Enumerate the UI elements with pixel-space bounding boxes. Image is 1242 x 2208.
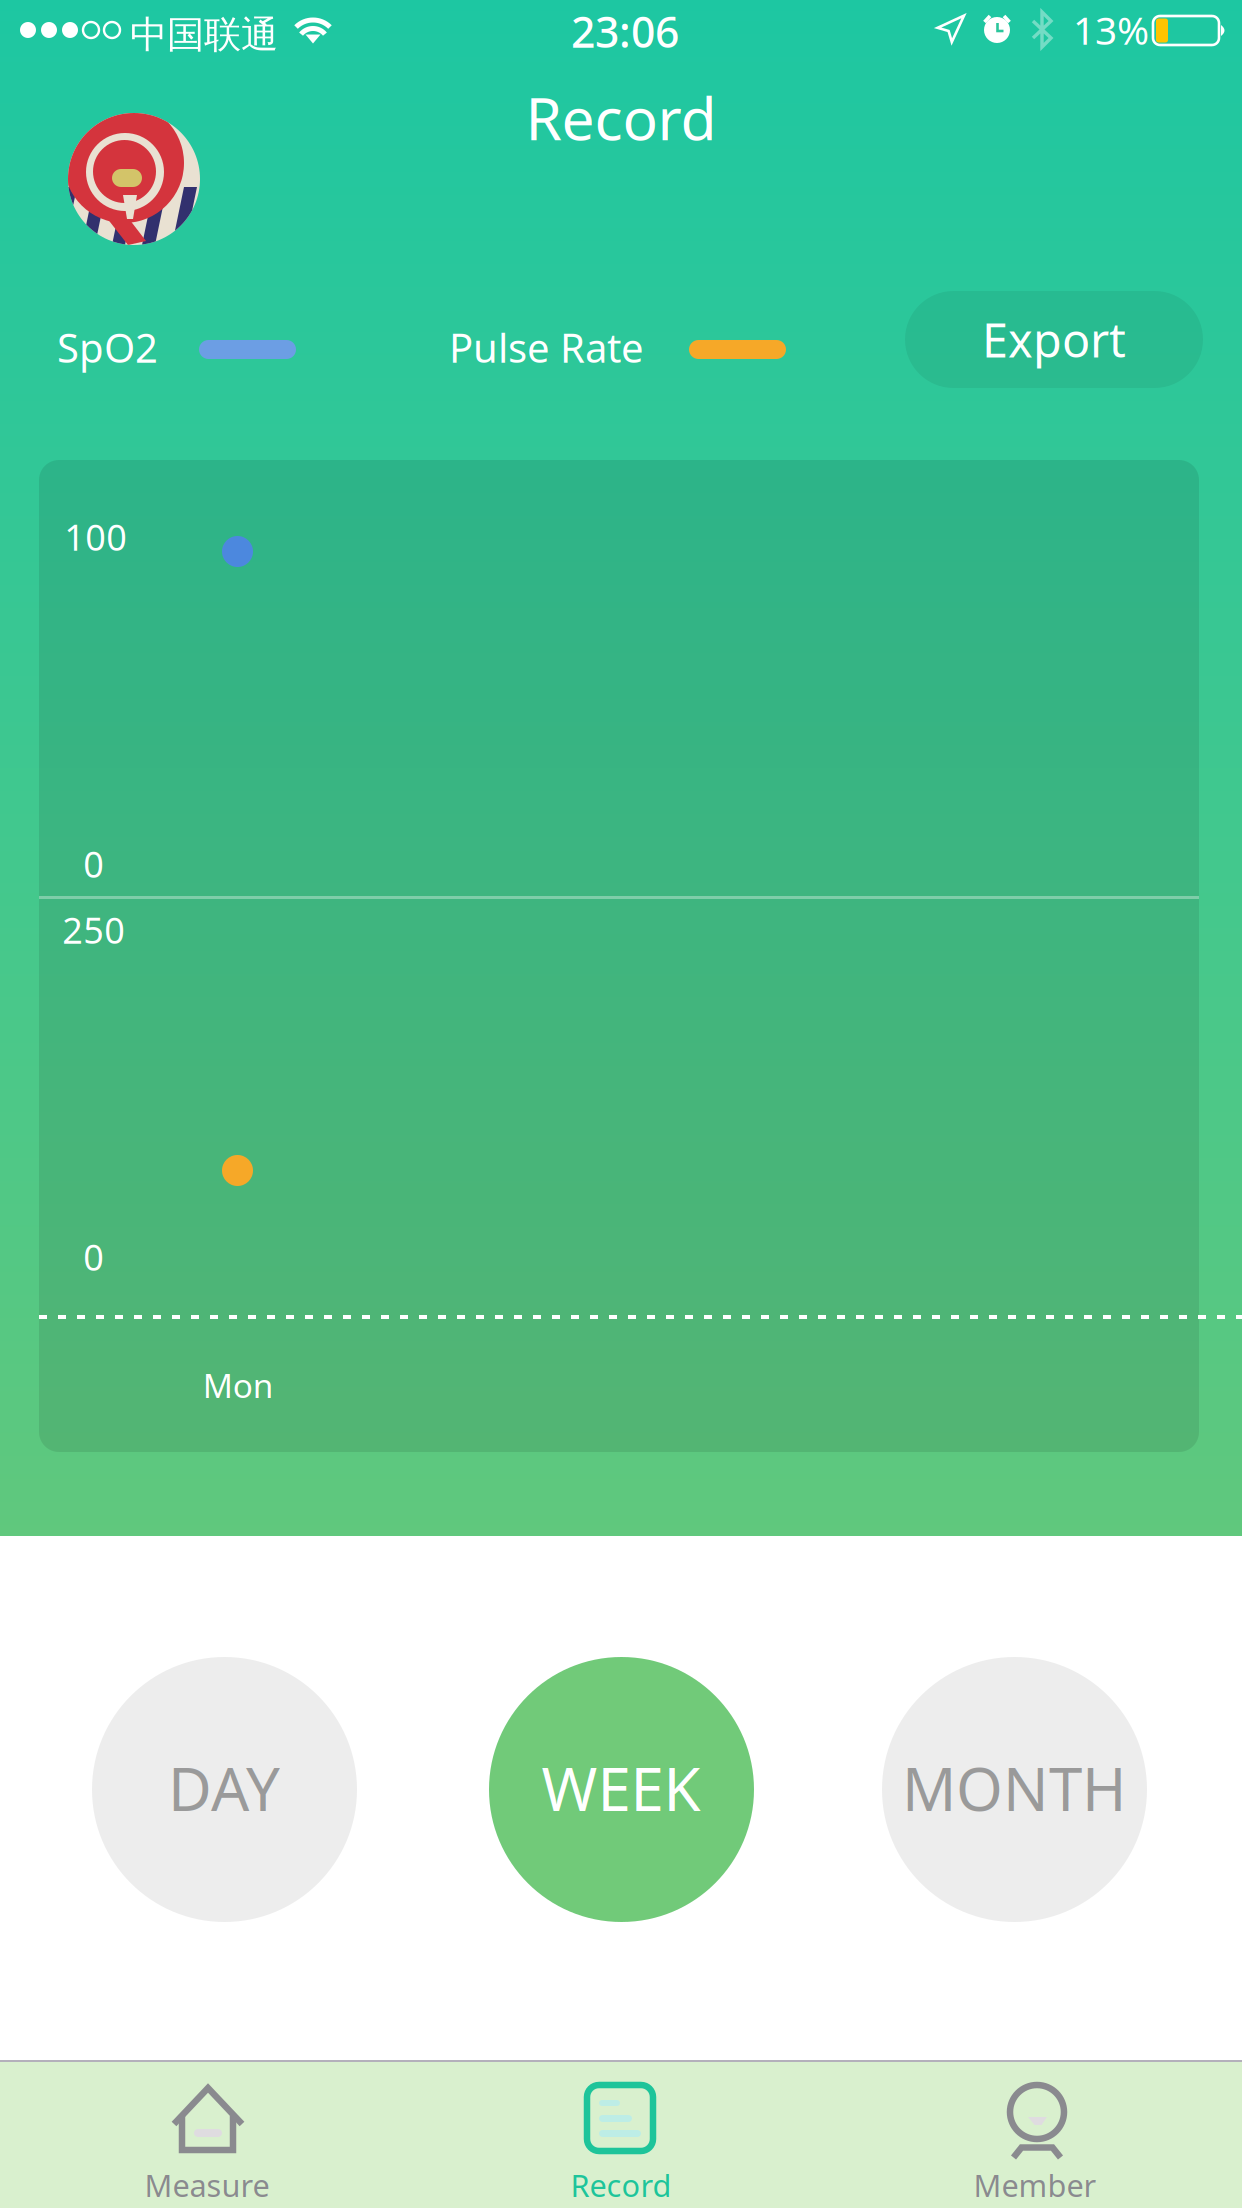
staticText: 0 xyxy=(83,1233,104,1281)
staticText: WEEK xyxy=(541,1748,700,1828)
staticText: 100 xyxy=(64,513,127,561)
button[interactable]: Record xyxy=(414,2060,828,2208)
staticText: DAY xyxy=(168,1748,280,1828)
staticText: Mon xyxy=(203,1363,274,1407)
staticText: MONTH xyxy=(902,1748,1126,1828)
button[interactable]: Export xyxy=(905,291,1203,388)
staticText: Record xyxy=(525,78,716,156)
button[interactable]: Member xyxy=(828,2060,1242,2208)
button[interactable]: MONTH xyxy=(882,1657,1147,1922)
staticText: 23:06 xyxy=(571,3,679,59)
staticText: 中国联通 xyxy=(130,12,278,58)
staticText: Pulse Rate xyxy=(449,321,644,374)
staticText: 250 xyxy=(62,906,125,954)
staticText: SpO2 xyxy=(57,321,158,374)
staticText: Measure xyxy=(144,2165,269,2205)
staticText: Member xyxy=(973,2165,1096,2205)
staticText: 13% xyxy=(1073,4,1149,55)
staticText: 0 xyxy=(83,840,104,888)
button[interactable]: Profile xyxy=(68,113,200,245)
button[interactable]: WEEK xyxy=(489,1657,754,1922)
button[interactable]: DAY xyxy=(92,1657,357,1922)
staticText: Record xyxy=(570,2165,671,2205)
staticText: Export xyxy=(982,308,1126,370)
button[interactable]: Measure xyxy=(0,2060,414,2208)
